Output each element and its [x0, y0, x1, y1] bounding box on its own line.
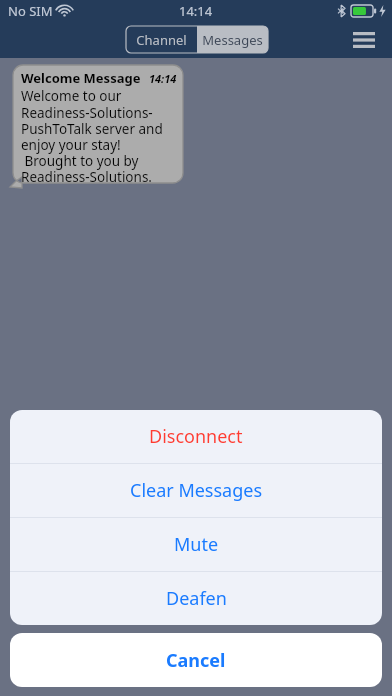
staticText: Disconnect [149, 424, 243, 449]
staticText: 14:14 [179, 2, 213, 20]
button[interactable]: Clear Messages [10, 464, 382, 517]
staticText: Welcome Message [21, 69, 141, 87]
staticText: Messages [202, 31, 263, 49]
staticText: Cancel [166, 648, 226, 673]
button[interactable]: Messages [197, 26, 268, 53]
staticText: 14:14 [149, 71, 177, 86]
staticText: No SIM [8, 2, 53, 20]
button[interactable]: Mute [10, 518, 382, 571]
staticText: Mute [174, 532, 219, 557]
button[interactable]: Disconnect [10, 410, 382, 463]
staticText: Clear Messages [130, 478, 263, 503]
button[interactable]: Menu [344, 24, 384, 56]
staticText: Deafen [166, 586, 227, 611]
button[interactable]: Cancel [10, 633, 382, 687]
staticText: Welcome to our Readiness-Solutions-PushT… [21, 87, 171, 186]
button[interactable]: Channel [126, 26, 197, 53]
staticText: Channel [136, 31, 187, 49]
button[interactable]: Deafen [10, 572, 382, 625]
